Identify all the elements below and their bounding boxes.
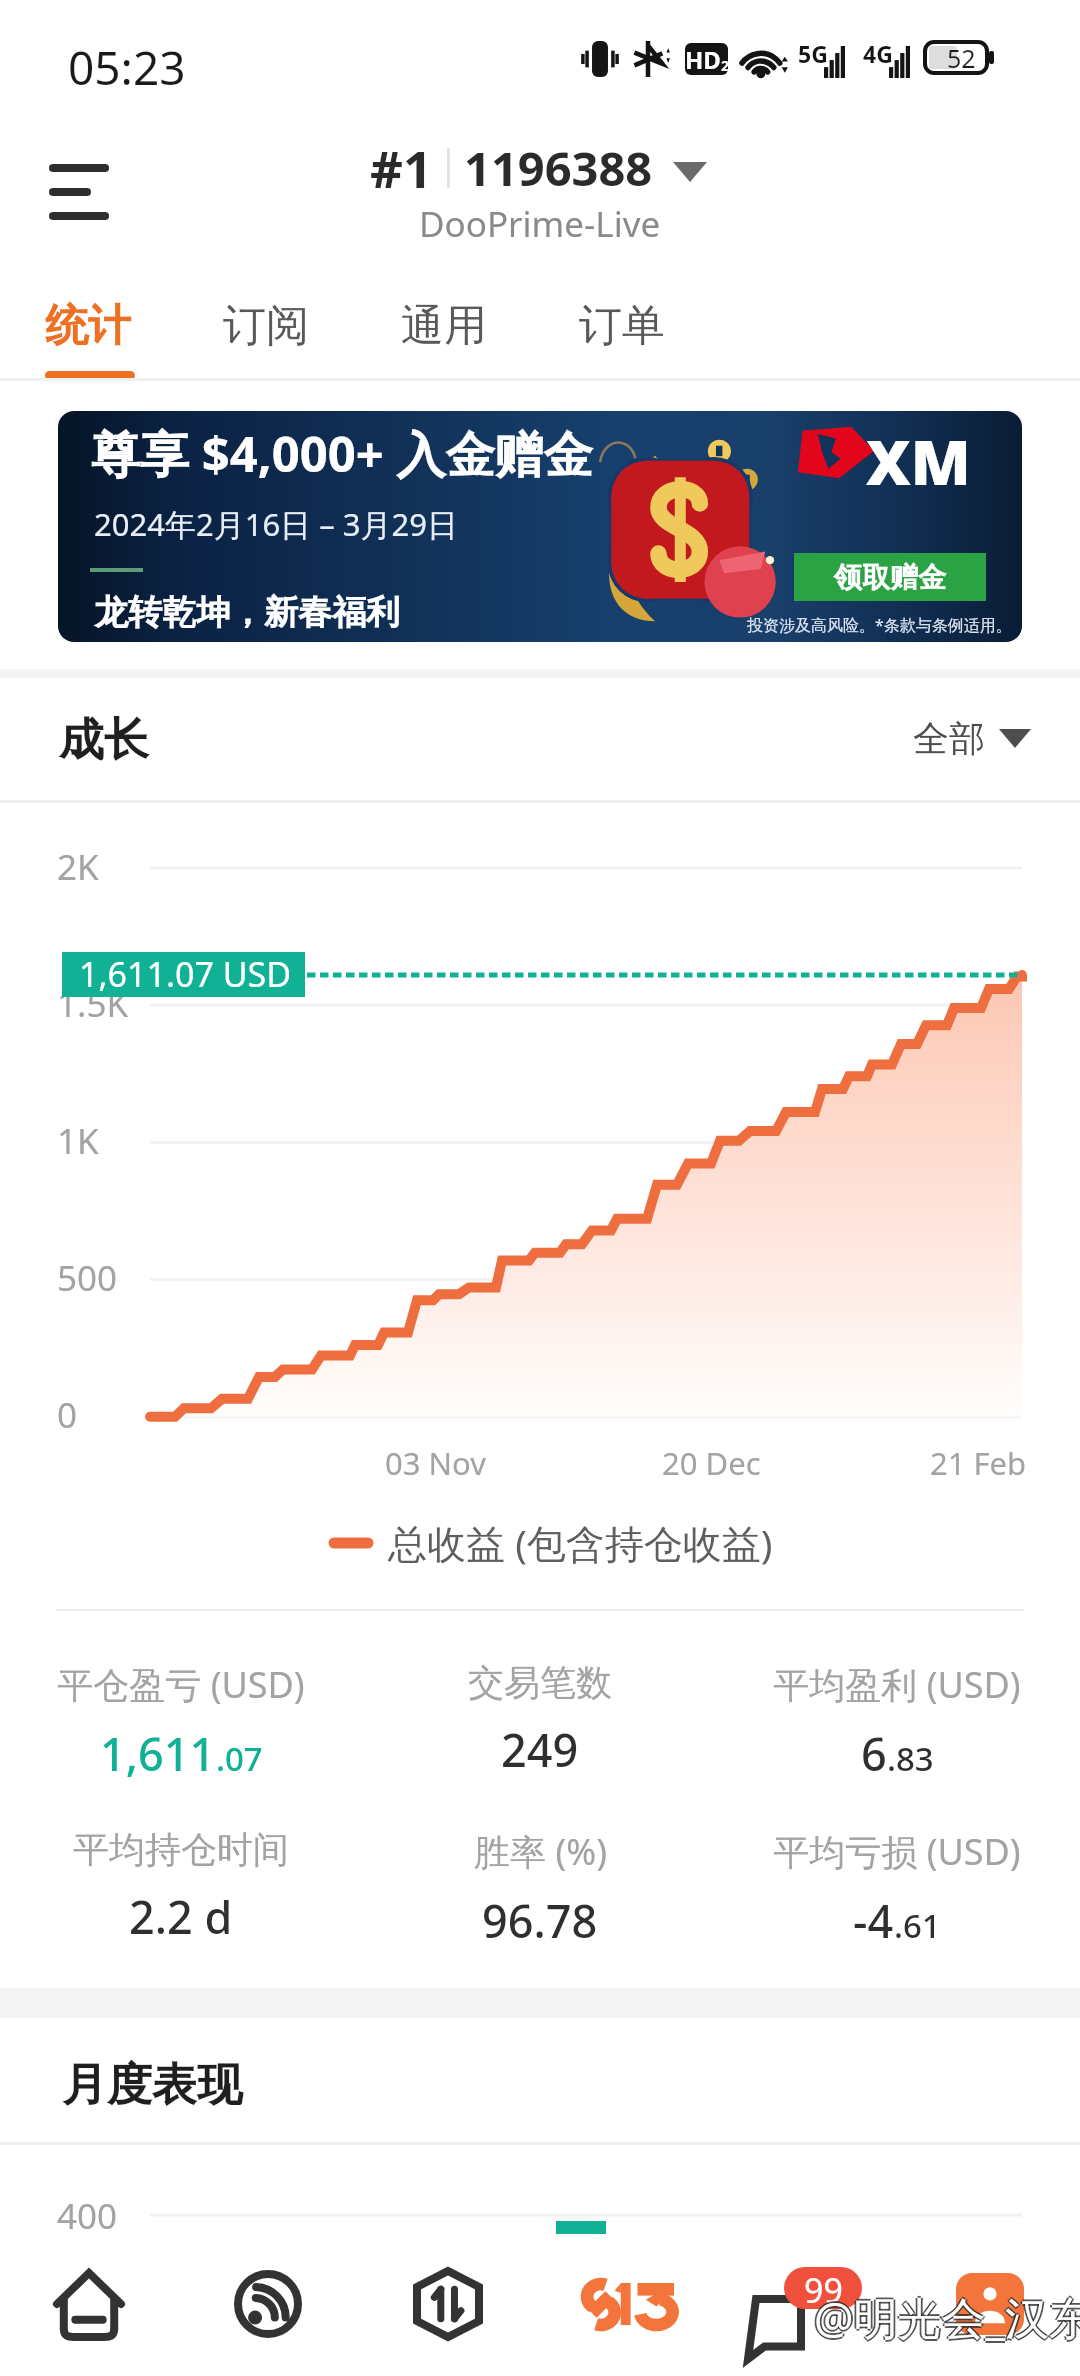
- staticText: @明光会_汉东: [812, 2287, 1080, 2347]
- staticText: @明光会_汉东: [816, 2287, 1080, 2347]
- staticText: @明光会_汉东: [814, 2287, 1080, 2347]
- button[interactable]: 通用: [401, 290, 541, 380]
- button[interactable]: 订阅: [223, 290, 363, 380]
- button[interactable]: Profile: [918, 2267, 1062, 2341]
- staticText: 21 Feb: [930, 1442, 1027, 1484]
- staticText: 03 Nov: [385, 1442, 486, 1484]
- staticText: .61: [894, 1903, 941, 1948]
- staticText: DooPrime-Live: [419, 200, 661, 248]
- staticText: 249: [501, 1719, 579, 1780]
- staticText: #1: [370, 133, 433, 202]
- button[interactable]: 领取赠金: [794, 553, 986, 601]
- staticText: 胜率 (%): [474, 1827, 607, 1876]
- staticText: 400: [57, 2192, 118, 2240]
- button[interactable]: Home: [17, 2267, 161, 2341]
- staticText: 统计: [45, 299, 131, 353]
- button[interactable]: 全部: [913, 716, 1031, 761]
- button[interactable]: 尊享 $4,000+ 入金赠金: [58, 411, 1022, 642]
- button[interactable]: 订单: [579, 290, 719, 380]
- staticText: 2K: [57, 843, 99, 891]
- staticText: 成长: [59, 712, 149, 769]
- staticText: 订单: [579, 299, 665, 353]
- staticText: 4G: [863, 38, 893, 69]
- staticText: 2.2 d: [129, 1886, 233, 1947]
- staticText: 2024年2月16日 – 3月29日: [94, 503, 458, 545]
- staticText: 平均盈利 (USD): [773, 1660, 1021, 1709]
- staticText: 总收益 (包含持仓收益): [388, 1516, 773, 1569]
- staticText: 99: [804, 2267, 843, 2309]
- button[interactable]: Trade: [376, 2267, 520, 2341]
- staticText: 1196388: [464, 136, 653, 200]
- staticText: 领取赠金: [834, 560, 946, 595]
- staticText: 1.5K: [57, 980, 129, 1028]
- staticText: 52: [947, 41, 976, 72]
- staticText: XM: [866, 419, 971, 503]
- staticText: 通用: [401, 299, 487, 353]
- button[interactable]: S13: [558, 2267, 702, 2341]
- button[interactable]: 统计: [45, 290, 185, 380]
- button[interactable]: Signals: [196, 2267, 340, 2341]
- staticText: 月度表现: [62, 2057, 242, 2114]
- staticText: 6: [861, 1723, 887, 1784]
- staticText: 2: [721, 56, 728, 75]
- button[interactable]: #1: [0, 132, 1080, 250]
- staticText: 1,611.07 USD: [79, 951, 292, 996]
- staticText: @明光会_汉东: [814, 2285, 1080, 2345]
- staticText: 0: [57, 1391, 78, 1439]
- staticText: 1K: [57, 1117, 99, 1165]
- staticText: .83: [887, 1736, 934, 1781]
- staticText: -4: [853, 1890, 894, 1951]
- staticText: 20 Dec: [662, 1442, 761, 1484]
- staticText: 龙转乾坤，新春福利: [94, 591, 400, 634]
- staticText: 交易笔数: [468, 1660, 612, 1705]
- staticText: 5G: [798, 38, 828, 69]
- button[interactable]: Menu: [30, 140, 128, 244]
- staticText: 平均亏损 (USD): [773, 1827, 1021, 1876]
- staticText: 05:23: [68, 36, 186, 99]
- button[interactable]: Messages: [734, 2267, 878, 2341]
- staticText: 500: [57, 1254, 118, 1302]
- staticText: .07: [216, 1736, 263, 1781]
- staticText: @明光会_汉东: [814, 2289, 1080, 2349]
- staticText: HD: [685, 43, 721, 75]
- staticText: 投资涉及高风险。*条款与条例适用。: [747, 614, 1012, 636]
- staticText: 平均持仓时间: [73, 1827, 289, 1872]
- staticText: 全部: [913, 716, 985, 761]
- staticText: 1,611: [100, 1723, 216, 1784]
- staticText: 96.78: [482, 1890, 598, 1951]
- staticText: 订阅: [223, 299, 309, 353]
- staticText: 尊享 $4,000+ 入金赠金: [91, 420, 593, 487]
- staticText: 平仓盈亏 (USD): [57, 1660, 305, 1709]
